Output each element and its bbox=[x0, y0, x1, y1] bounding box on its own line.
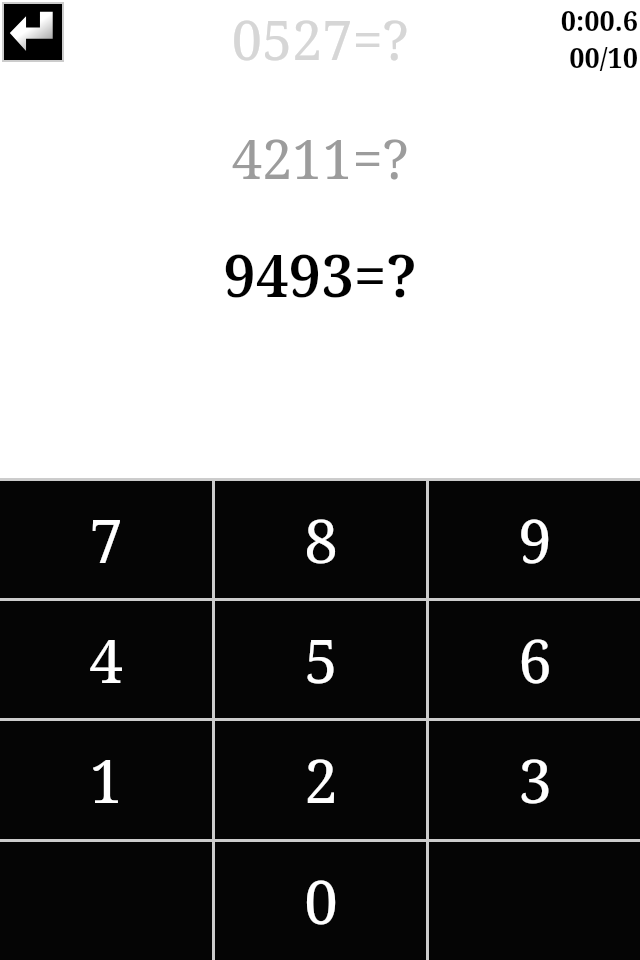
button[interactable]: 7 bbox=[0, 481, 212, 598]
staticText: 2 bbox=[304, 739, 338, 821]
staticText: 0:00.6 bbox=[560, 2, 638, 39]
staticText: 5 bbox=[304, 619, 338, 701]
staticText: 0 bbox=[304, 860, 338, 942]
staticText: 3 bbox=[518, 739, 552, 821]
staticText: 7 bbox=[89, 499, 123, 581]
staticText: 4211=? bbox=[0, 121, 640, 195]
staticText: 9493=? bbox=[0, 235, 640, 314]
button[interactable]: 9 bbox=[429, 481, 640, 598]
button[interactable]: 2 bbox=[215, 721, 426, 839]
button[interactable]: 6 bbox=[429, 601, 640, 718]
staticText: 4 bbox=[89, 619, 123, 701]
button[interactable]: 8 bbox=[215, 481, 426, 598]
button[interactable]: 5 bbox=[215, 601, 426, 718]
button[interactable]: 3 bbox=[429, 721, 640, 839]
staticText: 1 bbox=[89, 739, 123, 821]
staticText: 00/10 bbox=[569, 39, 638, 76]
staticText: 8 bbox=[304, 499, 338, 581]
staticText: 9 bbox=[518, 499, 552, 581]
button[interactable]: 0 bbox=[215, 842, 426, 960]
staticText: 0527=? bbox=[0, 2, 640, 76]
staticText: 6 bbox=[518, 619, 552, 701]
button[interactable]: Back bbox=[4, 4, 62, 60]
button[interactable]: 1 bbox=[0, 721, 212, 839]
button[interactable]: 4 bbox=[0, 601, 212, 718]
